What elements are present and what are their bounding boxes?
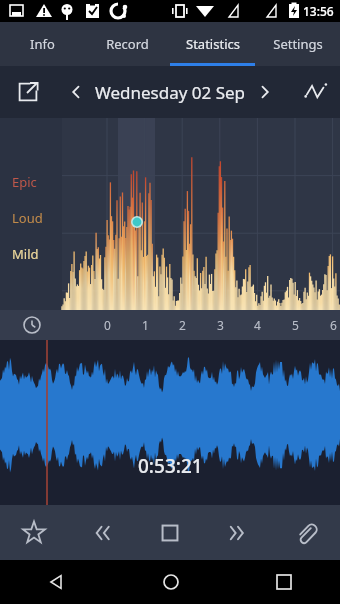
staticText: Wednesday 02 Sep <box>95 81 246 104</box>
button[interactable]: Forward <box>204 505 272 560</box>
button[interactable]: Share <box>8 72 48 112</box>
staticText: Info <box>30 35 55 53</box>
staticText: 5 <box>292 317 299 333</box>
button[interactable]: Previous day <box>63 79 89 105</box>
staticText: 6 <box>330 317 337 333</box>
button[interactable]: Stop <box>136 505 204 560</box>
button[interactable]: Record <box>85 22 170 66</box>
staticText: Loud <box>12 209 43 227</box>
staticText: Settings <box>273 35 323 53</box>
button[interactable]: Attach <box>272 505 340 560</box>
button[interactable]: Next day <box>252 79 278 105</box>
staticText: Statistics <box>186 35 240 53</box>
staticText: 4 <box>254 317 261 333</box>
button[interactable]: Recents <box>227 560 340 604</box>
staticText: 1 <box>142 317 149 333</box>
button[interactable]: Settings <box>255 22 340 66</box>
button[interactable]: Statistics <box>170 22 255 66</box>
staticText: 13:56 <box>303 3 334 19</box>
staticText: Record <box>106 35 149 53</box>
staticText: 0:53:21 <box>138 453 203 479</box>
button[interactable]: Home <box>114 560 227 604</box>
button[interactable]: Time scale <box>20 313 44 337</box>
staticText: 2 <box>179 317 186 333</box>
staticText: Mild <box>12 245 39 263</box>
staticText: Epic <box>12 173 37 191</box>
button[interactable]: Back <box>0 560 114 604</box>
button[interactable]: Rewind <box>68 505 136 560</box>
staticText: 3 <box>217 317 224 333</box>
button[interactable]: Bookmark <box>0 505 68 560</box>
button[interactable]: Graph view <box>296 72 336 112</box>
button[interactable]: Info <box>0 22 85 66</box>
staticText: 0 <box>104 317 111 333</box>
